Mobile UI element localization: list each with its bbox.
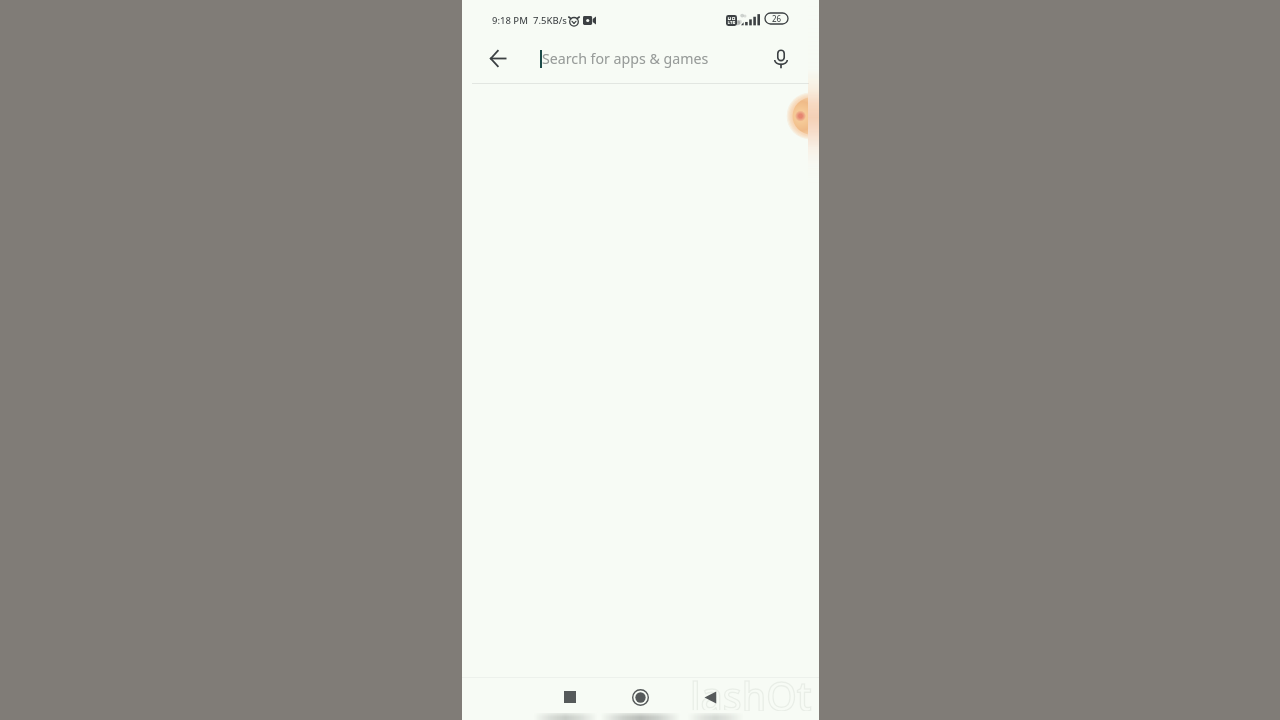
staticText: 26 xyxy=(772,13,782,24)
button[interactable]: Voice search xyxy=(742,34,819,83)
staticText: 9:18 PM xyxy=(492,14,528,27)
button[interactable]: Back xyxy=(675,676,745,718)
staticText: 7.5KB/s xyxy=(533,14,567,27)
button[interactable]: Recent apps xyxy=(535,676,605,718)
button[interactable]: Back xyxy=(462,34,535,83)
staticText: Search for apps & games xyxy=(542,49,709,68)
staticText: lashOt xyxy=(690,669,812,711)
button[interactable]: Home xyxy=(605,676,675,718)
